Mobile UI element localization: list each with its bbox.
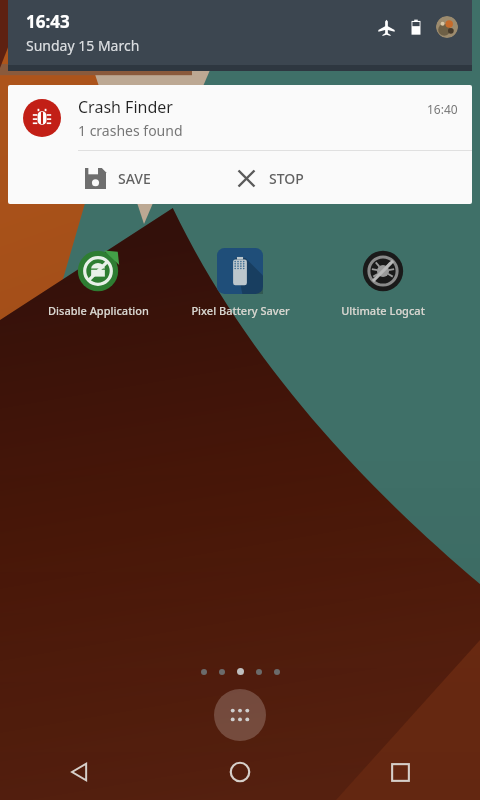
staticText: Ultimate Logcat — [341, 303, 425, 318]
button[interactable]: Ultimate Logcat — [328, 243, 438, 318]
button[interactable]: Disable Application — [43, 243, 153, 318]
button[interactable]: SAVE — [78, 159, 157, 197]
staticText: STOP — [269, 169, 304, 188]
button[interactable]: User profile — [436, 16, 458, 38]
staticText: 1 crashes found — [78, 121, 183, 140]
staticText: 16:43 — [26, 10, 70, 33]
button[interactable]: Pixel Battery Saver — [185, 243, 295, 318]
button[interactable]: Recents — [320, 744, 480, 800]
button[interactable]: Crash Finder — [8, 85, 472, 204]
staticText: Pixel Battery Saver — [191, 303, 290, 318]
staticText: SAVE — [118, 169, 151, 188]
other: Airplane mode — [376, 17, 396, 37]
staticText: Sunday 15 March — [26, 36, 140, 55]
staticText: 16:40 — [427, 101, 458, 117]
staticText: Disable Application — [48, 303, 149, 318]
button[interactable]: Back — [0, 744, 160, 800]
button[interactable]: All apps — [214, 689, 266, 741]
other: Battery — [406, 17, 426, 37]
button[interactable]: STOP — [229, 159, 310, 197]
button[interactable]: Home — [160, 744, 320, 800]
staticText: Crash Finder — [78, 96, 173, 118]
